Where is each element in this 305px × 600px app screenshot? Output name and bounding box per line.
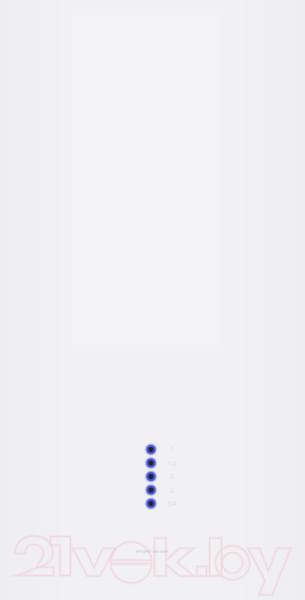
staticText: 1/2 <box>167 459 177 467</box>
staticText: 1 <box>170 445 174 454</box>
staticText: интернет-магазин <box>135 548 167 554</box>
staticText: 3/4 <box>167 499 177 508</box>
staticText: 2 <box>170 486 174 494</box>
staticText: 3 <box>170 472 174 481</box>
